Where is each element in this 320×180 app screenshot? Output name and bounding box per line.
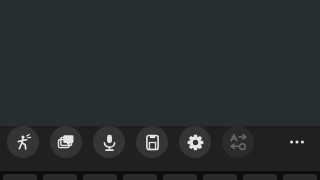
button[interactable]: Settings <box>179 126 211 158</box>
button[interactable]: Screen share <box>50 126 82 158</box>
button[interactable]: More options <box>281 126 313 158</box>
button[interactable]: Microphone <box>93 126 125 158</box>
button[interactable]: Accessibility <box>7 126 39 158</box>
button[interactable]: Translate <box>222 126 254 158</box>
button[interactable]: Clipboard <box>136 126 168 158</box>
